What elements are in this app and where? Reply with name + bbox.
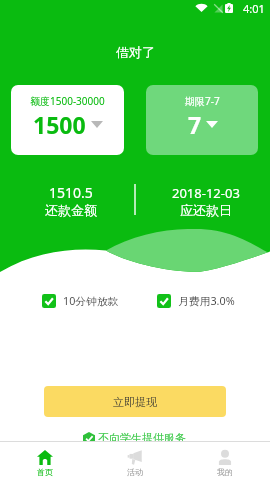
- button[interactable]: 首页: [0, 445, 90, 477]
- staticText: 1510.5: [49, 183, 93, 202]
- staticText: 月费用3.0%: [178, 293, 235, 308]
- staticText: 1500: [33, 109, 86, 140]
- other: Wi-Fi: [195, 4, 208, 12]
- staticText: 2018-12-03: [172, 184, 240, 202]
- staticText: 4:01: [243, 1, 265, 16]
- button[interactable]: 额度1500-30000: [11, 85, 124, 155]
- staticText: 10分钟放款: [63, 293, 119, 308]
- button[interactable]: 月费用3.0%: [157, 293, 235, 308]
- staticText: 首页: [37, 467, 53, 477]
- staticText: 额度1500-30000: [30, 94, 105, 108]
- button[interactable]: 期限7-7: [146, 85, 258, 155]
- staticText: 期限7-7: [185, 94, 220, 108]
- staticText: 应还款日: [180, 202, 232, 218]
- other: No signal: [214, 4, 223, 13]
- staticText: 借对了: [116, 44, 155, 60]
- button[interactable]: 10分钟放款: [42, 293, 119, 308]
- staticText: 7: [188, 109, 202, 140]
- other: Battery: [225, 3, 233, 13]
- staticText: 不向学生提供服务: [98, 431, 186, 445]
- staticText: 立即提现: [113, 395, 157, 409]
- staticText: 还款金额: [45, 202, 97, 218]
- button[interactable]: 我的: [180, 445, 270, 477]
- staticText: 我的: [217, 467, 233, 477]
- button[interactable]: 活动: [90, 445, 180, 477]
- staticText: 活动: [127, 467, 143, 477]
- button[interactable]: 立即提现: [44, 386, 226, 417]
